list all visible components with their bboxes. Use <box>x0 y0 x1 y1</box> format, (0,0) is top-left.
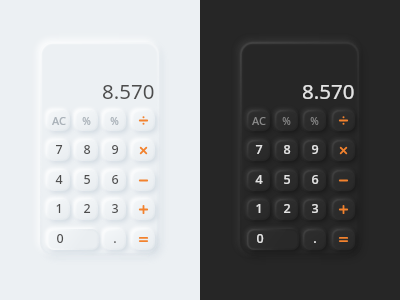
button[interactable]: Minus <box>132 170 155 191</box>
staticText: 0 <box>56 230 64 247</box>
staticText: 7 <box>255 141 263 158</box>
staticText: 3 <box>111 200 119 217</box>
staticText: 7 <box>55 141 63 158</box>
staticText: 6 <box>111 171 119 188</box>
button[interactable]: 3 <box>103 199 126 220</box>
button[interactable]: Plus <box>332 199 355 220</box>
button[interactable]: 7 <box>247 140 270 161</box>
button[interactable]: 5 <box>275 170 298 191</box>
staticText: 3 <box>311 200 319 217</box>
button[interactable]: 3 <box>303 199 326 220</box>
staticText: 1 <box>55 200 63 217</box>
button[interactable]: 6 <box>103 170 126 191</box>
button[interactable]: AC <box>47 110 70 131</box>
button[interactable]: 6 <box>303 170 326 191</box>
staticText: 9 <box>311 141 319 158</box>
button[interactable]: Percent <box>103 110 126 131</box>
button[interactable]: Toggle sign <box>275 110 298 131</box>
staticText: % <box>282 114 291 128</box>
button[interactable]: 4 <box>247 170 270 191</box>
button[interactable]: AC <box>247 110 270 131</box>
staticText: 8 <box>283 141 291 158</box>
button[interactable]: . <box>303 229 326 250</box>
staticText: 2 <box>283 200 291 217</box>
button[interactable]: Divide <box>332 110 355 131</box>
button[interactable]: 0 <box>47 229 99 250</box>
button[interactable]: 4 <box>47 170 70 191</box>
button[interactable]: 2 <box>275 199 298 220</box>
button[interactable]: 1 <box>47 199 70 220</box>
button[interactable]: Plus <box>132 199 155 220</box>
staticText: % <box>310 114 319 128</box>
button[interactable]: Equals <box>132 229 155 250</box>
button[interactable]: Divide <box>132 110 155 131</box>
staticText: AC <box>52 113 66 128</box>
button[interactable]: 2 <box>75 199 98 220</box>
staticText: AC <box>252 113 266 128</box>
staticText: 9 <box>111 141 119 158</box>
staticText: . <box>313 230 317 247</box>
staticText: 4 <box>255 171 263 188</box>
staticText: 2 <box>83 200 91 217</box>
button[interactable]: Toggle sign <box>75 110 98 131</box>
staticText: 1 <box>255 200 263 217</box>
button[interactable]: Minus <box>332 170 355 191</box>
button[interactable]: 8 <box>275 140 298 161</box>
button[interactable]: Percent <box>303 110 326 131</box>
button[interactable]: 9 <box>103 140 126 161</box>
button[interactable]: Multiply <box>332 140 355 161</box>
button[interactable]: . <box>103 229 126 250</box>
staticText: 4 <box>55 171 63 188</box>
button[interactable]: 5 <box>75 170 98 191</box>
button[interactable]: 8 <box>75 140 98 161</box>
staticText: 0 <box>256 230 264 247</box>
staticText: 8 <box>83 141 91 158</box>
staticText: 5 <box>83 171 91 188</box>
staticText: . <box>113 230 117 247</box>
button[interactable]: Multiply <box>132 140 155 161</box>
staticText: 8.570 <box>302 77 355 103</box>
button[interactable]: 1 <box>247 199 270 220</box>
staticText: 6 <box>311 171 319 188</box>
button[interactable]: 0 <box>247 229 299 250</box>
button[interactable]: 9 <box>303 140 326 161</box>
button[interactable]: Equals <box>332 229 355 250</box>
staticText: 8.570 <box>102 77 155 103</box>
staticText: % <box>82 114 91 128</box>
staticText: 5 <box>283 171 291 188</box>
staticText: % <box>110 114 119 128</box>
button[interactable]: 7 <box>47 140 70 161</box>
